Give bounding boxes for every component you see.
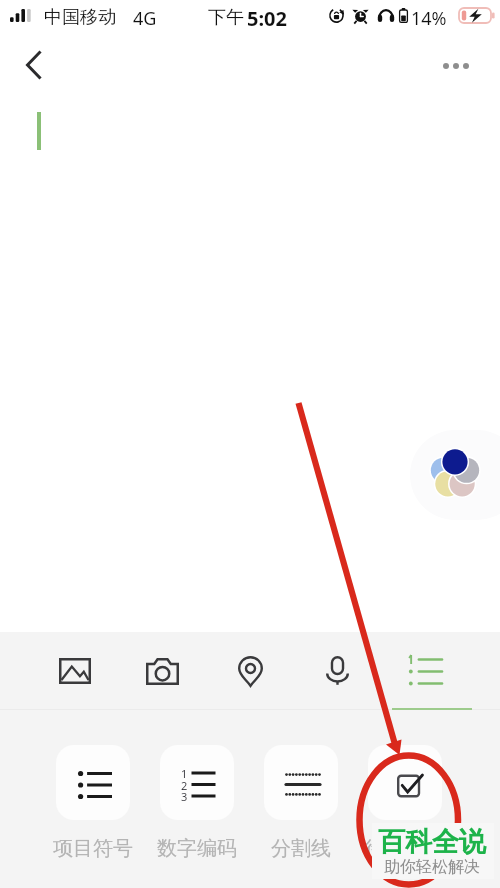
staticText: 中国移动 bbox=[44, 6, 116, 29]
staticText: 数字编码 bbox=[157, 836, 237, 861]
button[interactable]: Location bbox=[222, 642, 278, 700]
staticText: 待办事项 bbox=[365, 836, 445, 861]
button[interactable] bbox=[38, 745, 148, 885]
button[interactable]: Assistant bbox=[410, 430, 500, 520]
staticText: 1 bbox=[181, 766, 188, 780]
button[interactable]: Voice input bbox=[309, 642, 365, 700]
staticText: 4G bbox=[133, 6, 157, 31]
staticText: 3 bbox=[181, 789, 188, 803]
staticText: 2 bbox=[181, 778, 188, 792]
button[interactable]: More options bbox=[433, 43, 479, 89]
button[interactable] bbox=[350, 745, 460, 885]
staticText: 下午 bbox=[208, 6, 244, 29]
staticText: 14% bbox=[411, 6, 447, 31]
button[interactable]: Insert image bbox=[47, 642, 103, 700]
button[interactable]: Camera bbox=[134, 642, 190, 700]
button[interactable]: Back bbox=[11, 43, 55, 87]
staticText: 5:02 bbox=[247, 5, 287, 32]
staticText: 助你轻松解决 bbox=[384, 857, 480, 877]
staticText: 分割线 bbox=[271, 836, 331, 861]
button[interactable] bbox=[246, 745, 356, 885]
button[interactable]: Lists bbox=[397, 642, 453, 700]
staticText: 项目符号 bbox=[53, 836, 133, 861]
button[interactable]: 1 bbox=[142, 745, 252, 885]
staticText: 百科全说 bbox=[378, 825, 486, 859]
